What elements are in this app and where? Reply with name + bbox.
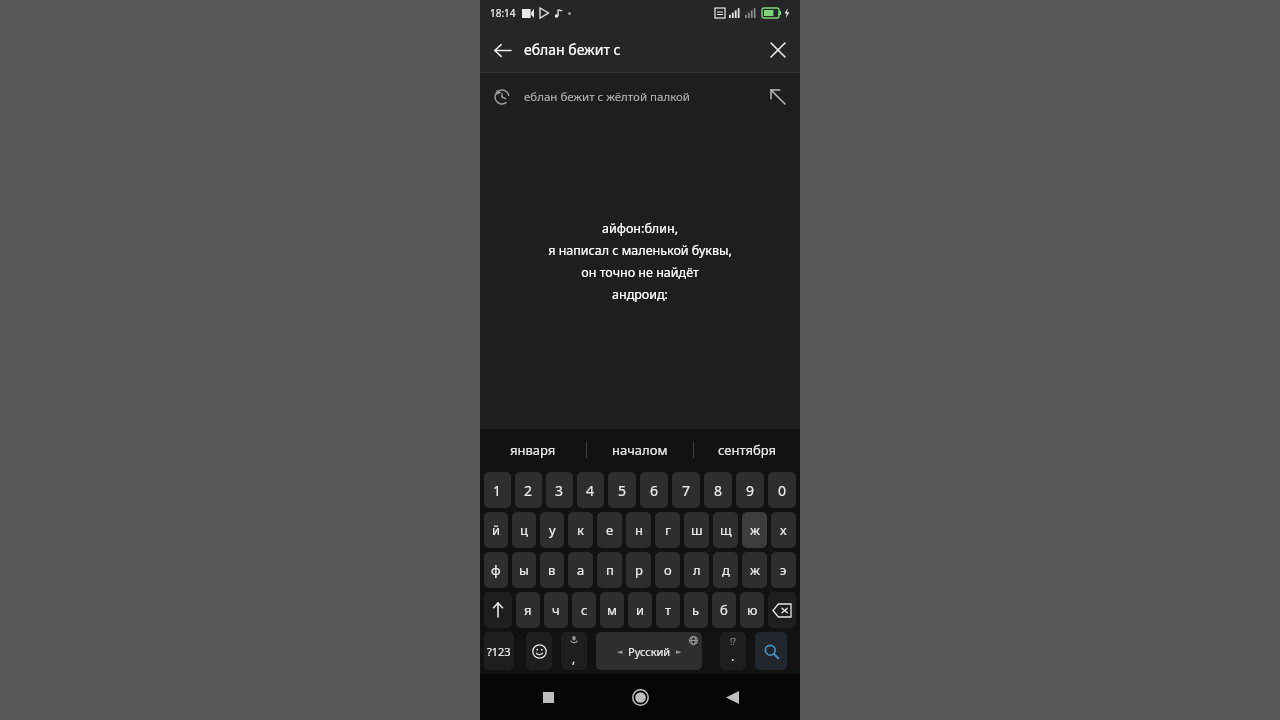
button[interactable]: ж — [742, 552, 767, 588]
button[interactable]: 0 — [768, 472, 796, 508]
button[interactable]: в — [540, 552, 564, 588]
staticText: т — [665, 601, 672, 619]
button[interactable]: 4 — [577, 472, 604, 508]
staticText: ц — [520, 521, 528, 539]
button[interactable]: и — [628, 592, 652, 628]
button[interactable]: 5 — [608, 472, 636, 508]
button[interactable]: Search — [755, 632, 787, 670]
button[interactable]: щ — [713, 512, 738, 548]
staticText: января — [510, 441, 556, 459]
button[interactable] — [526, 632, 552, 670]
staticText: п — [606, 561, 614, 579]
button[interactable]: н — [626, 512, 651, 548]
button[interactable]: д — [713, 552, 738, 588]
button[interactable]: г — [655, 512, 680, 548]
button[interactable]: ь — [684, 592, 708, 628]
button[interactable]: 1 — [484, 472, 511, 508]
button[interactable]: т — [656, 592, 680, 628]
staticText: 1 — [493, 481, 502, 500]
staticText: 0 — [778, 481, 787, 500]
button[interactable]: р — [626, 552, 651, 588]
staticText: й — [492, 521, 501, 539]
button[interactable]: 3 — [546, 472, 573, 508]
button[interactable]: й — [484, 512, 508, 548]
button[interactable]: Home — [616, 674, 664, 720]
button[interactable]: сентября — [694, 429, 800, 470]
button[interactable]: ш — [684, 512, 709, 548]
button[interactable]: 7 — [672, 472, 700, 508]
button[interactable]: ы — [512, 552, 536, 588]
staticText: 8 — [714, 481, 723, 500]
button[interactable]: , — [561, 632, 587, 670]
button[interactable]: еблан бежит с жёлтой палкой — [480, 73, 800, 121]
staticText: с — [581, 601, 588, 619]
button[interactable]: января — [480, 429, 586, 470]
staticText: . — [731, 647, 735, 665]
staticText: г — [665, 521, 671, 539]
staticText: а — [577, 561, 585, 579]
button[interactable]: ж — [742, 512, 767, 548]
button[interactable]: с — [572, 592, 596, 628]
button[interactable]: ◄ — [596, 632, 702, 670]
button[interactable]: ю — [740, 592, 764, 628]
staticText: х — [780, 521, 787, 539]
button[interactable]: Recents — [524, 674, 572, 720]
staticText: л — [693, 561, 701, 579]
button[interactable]: п — [597, 552, 622, 588]
staticText: ч — [552, 601, 560, 619]
staticText: 7 — [682, 481, 691, 500]
staticText: , — [572, 650, 576, 666]
staticText: еблан бежит с — [524, 40, 756, 59]
button[interactable]: ?123 — [484, 632, 514, 670]
staticText: 6 — [650, 481, 659, 500]
staticText: е — [606, 521, 614, 539]
button[interactable]: э — [771, 552, 796, 588]
button[interactable]: б — [712, 592, 736, 628]
button[interactable]: Insert suggestion — [756, 75, 800, 119]
staticText: сентября — [718, 441, 777, 459]
button[interactable]: 2 — [515, 472, 542, 508]
button[interactable]: началом — [587, 429, 693, 470]
button[interactable]: м — [600, 592, 624, 628]
button[interactable]: ч — [544, 592, 568, 628]
staticText: э — [780, 561, 787, 579]
staticText: айфон:блин, я написал с маленькой буквы,… — [548, 220, 732, 303]
staticText: и — [636, 601, 645, 619]
button[interactable]: е — [597, 512, 622, 548]
staticText: я — [524, 601, 532, 619]
staticText: у — [549, 521, 556, 539]
other: Search — [764, 644, 779, 659]
button[interactable]: к — [568, 512, 593, 548]
staticText: ь — [692, 601, 700, 619]
button[interactable]: 9 — [736, 472, 764, 508]
staticText: б — [720, 601, 728, 619]
staticText: в — [548, 561, 556, 579]
staticText: ◄ — [617, 648, 623, 656]
button[interactable]: я — [516, 592, 540, 628]
staticText: еблан бежит с жёлтой палкой — [524, 89, 756, 105]
button[interactable]: 8 — [704, 472, 732, 508]
button[interactable]: о — [655, 552, 680, 588]
button[interactable] — [484, 592, 512, 628]
button[interactable] — [768, 592, 796, 628]
staticText: 9 — [746, 481, 755, 500]
button[interactable]: Clear — [756, 28, 800, 72]
staticText: ж — [750, 561, 760, 579]
button[interactable]: ф — [484, 552, 508, 588]
button[interactable]: у — [540, 512, 564, 548]
button[interactable]: ц — [512, 512, 536, 548]
staticText: 18:14 — [490, 6, 516, 20]
button[interactable]: !? — [720, 632, 746, 670]
button[interactable]: х — [771, 512, 796, 548]
button[interactable]: Back — [480, 28, 524, 72]
staticText: !? — [730, 636, 736, 647]
staticText: ж — [750, 521, 760, 539]
staticText: Русский — [628, 644, 671, 659]
staticText: 3 — [555, 481, 564, 500]
button[interactable]: Back — [708, 674, 756, 720]
button[interactable]: л — [684, 552, 709, 588]
staticText: ► — [676, 648, 682, 656]
button[interactable]: 6 — [640, 472, 668, 508]
staticText: м — [607, 601, 617, 619]
button[interactable]: а — [568, 552, 593, 588]
